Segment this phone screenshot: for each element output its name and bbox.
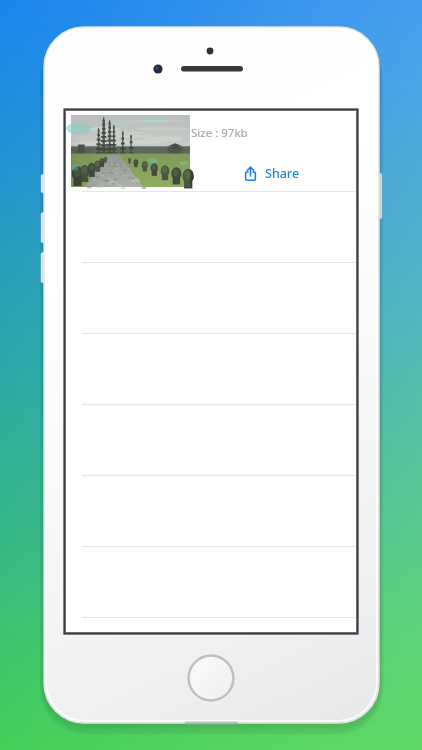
button[interactable]: Size : 97kb	[66, 111, 356, 191]
button[interactable]: Share	[240, 162, 303, 185]
staticText: Share	[265, 165, 300, 182]
staticText: Size : 97kb	[191, 125, 248, 141]
other: Share	[243, 166, 258, 181]
